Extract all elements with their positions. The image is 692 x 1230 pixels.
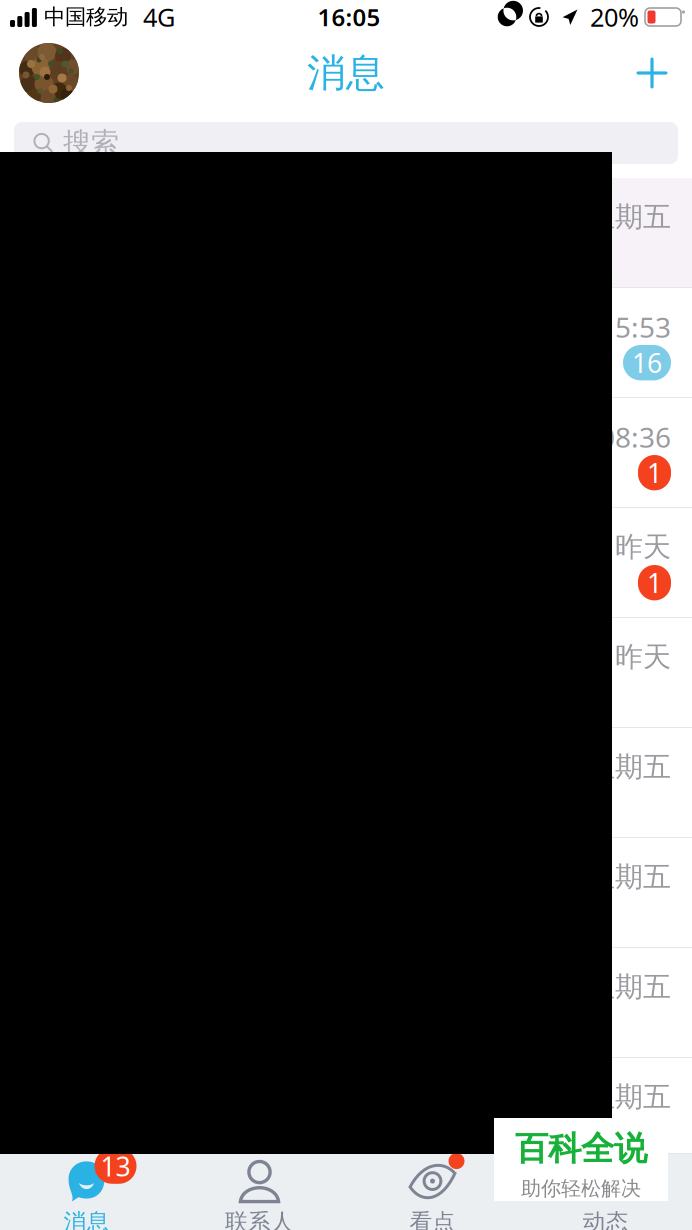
staticText: 看点 (409, 1208, 455, 1230)
staticText: 20% (590, 0, 639, 34)
button[interactable]: 看点 (346, 1154, 519, 1230)
button[interactable]: 昨天 (0, 508, 692, 618)
staticText: 4G (143, 0, 175, 34)
staticText: 搜索 (63, 126, 119, 160)
staticText: 昨天 (615, 640, 671, 674)
staticText: 星期五 (587, 860, 671, 894)
button[interactable]: 昨天 (0, 618, 692, 728)
staticText: 08:36 (599, 418, 671, 456)
staticText: 助你轻松解决 (521, 1176, 641, 1201)
staticText: 昨天 (615, 530, 671, 564)
staticText: 星期五 (587, 200, 671, 234)
staticText: 动态 (582, 1208, 628, 1230)
staticText: 16 (632, 345, 662, 380)
button[interactable]: 13 (0, 1154, 173, 1230)
staticText: 百科全说 (515, 1128, 647, 1169)
staticText: 16:05 (317, 1, 380, 33)
button[interactable]: Add (624, 47, 692, 99)
staticText: 星期五 (587, 1080, 671, 1114)
button[interactable]: Profile (0, 37, 87, 109)
staticText: 1 (647, 455, 662, 490)
staticText: 消息 (307, 49, 385, 97)
staticText: 消息 (63, 1208, 109, 1230)
button[interactable]: 搜索 (14, 122, 678, 164)
button[interactable]: 星期五 (0, 838, 692, 948)
staticText: 1 (647, 565, 662, 600)
button[interactable]: 星期五 (0, 1058, 692, 1154)
button[interactable]: 08:36 (0, 398, 692, 508)
button[interactable]: 星期五 (0, 178, 692, 288)
button[interactable]: 星期五 (0, 728, 692, 838)
button[interactable]: 联系人 (173, 1154, 346, 1230)
staticText: 联系人 (225, 1208, 294, 1230)
staticText: 15:53 (599, 308, 671, 346)
staticText: 星期五 (587, 750, 671, 784)
button[interactable]: 动态 (519, 1154, 692, 1230)
staticText: 星期五 (587, 970, 671, 1004)
staticText: 中国移动 (44, 4, 128, 30)
staticText: 13 (100, 1148, 130, 1184)
button[interactable]: 星期五 (0, 948, 692, 1058)
button[interactable]: 15:53 (0, 288, 692, 398)
